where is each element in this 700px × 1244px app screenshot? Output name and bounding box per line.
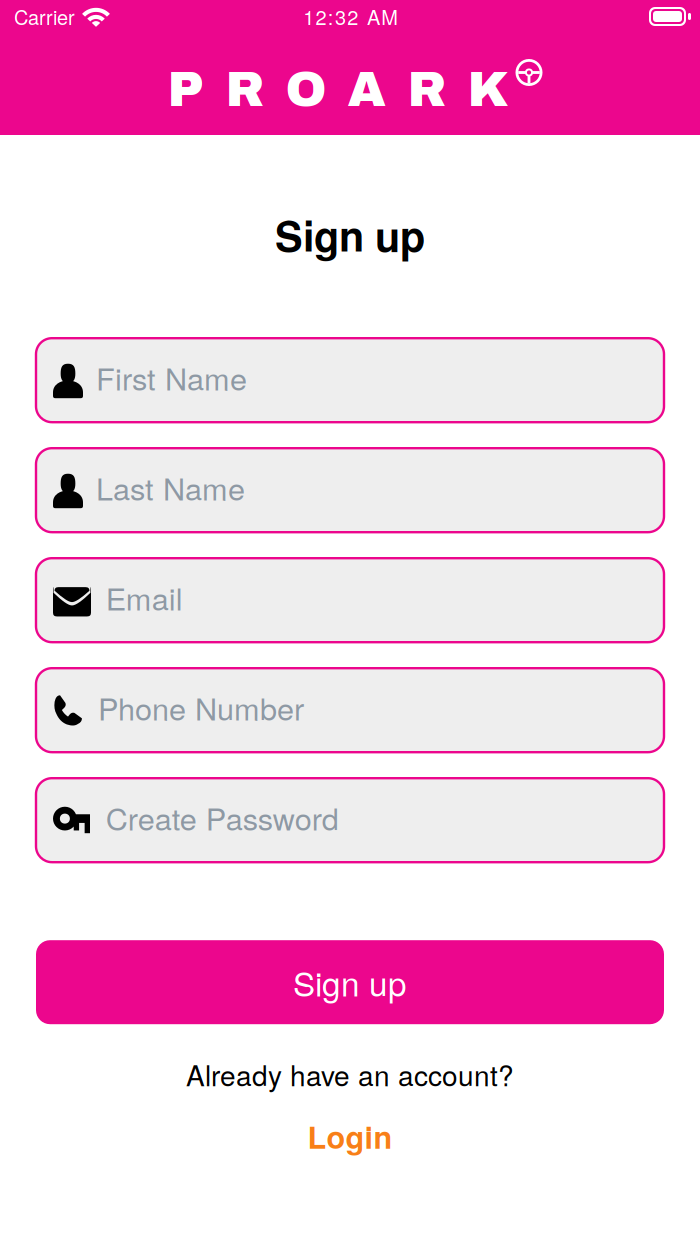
staticText: Phone Number [98,685,304,729]
staticText: 12:32 AM [303,2,398,31]
staticText: Sign up [293,958,407,1006]
staticText: Carrier [14,2,75,31]
button[interactable]: Sign up [36,940,664,1024]
staticText: Create Password [106,795,339,839]
staticText: First Name [96,355,247,399]
staticText: PROARK [167,63,508,116]
staticText: Login [307,1114,392,1158]
staticText: Sign up [275,205,425,264]
staticText: Email [106,575,183,619]
button[interactable]: Login [283,1104,416,1168]
staticText: Last Name [96,465,245,509]
staticText: Already have an account? [186,1054,514,1094]
